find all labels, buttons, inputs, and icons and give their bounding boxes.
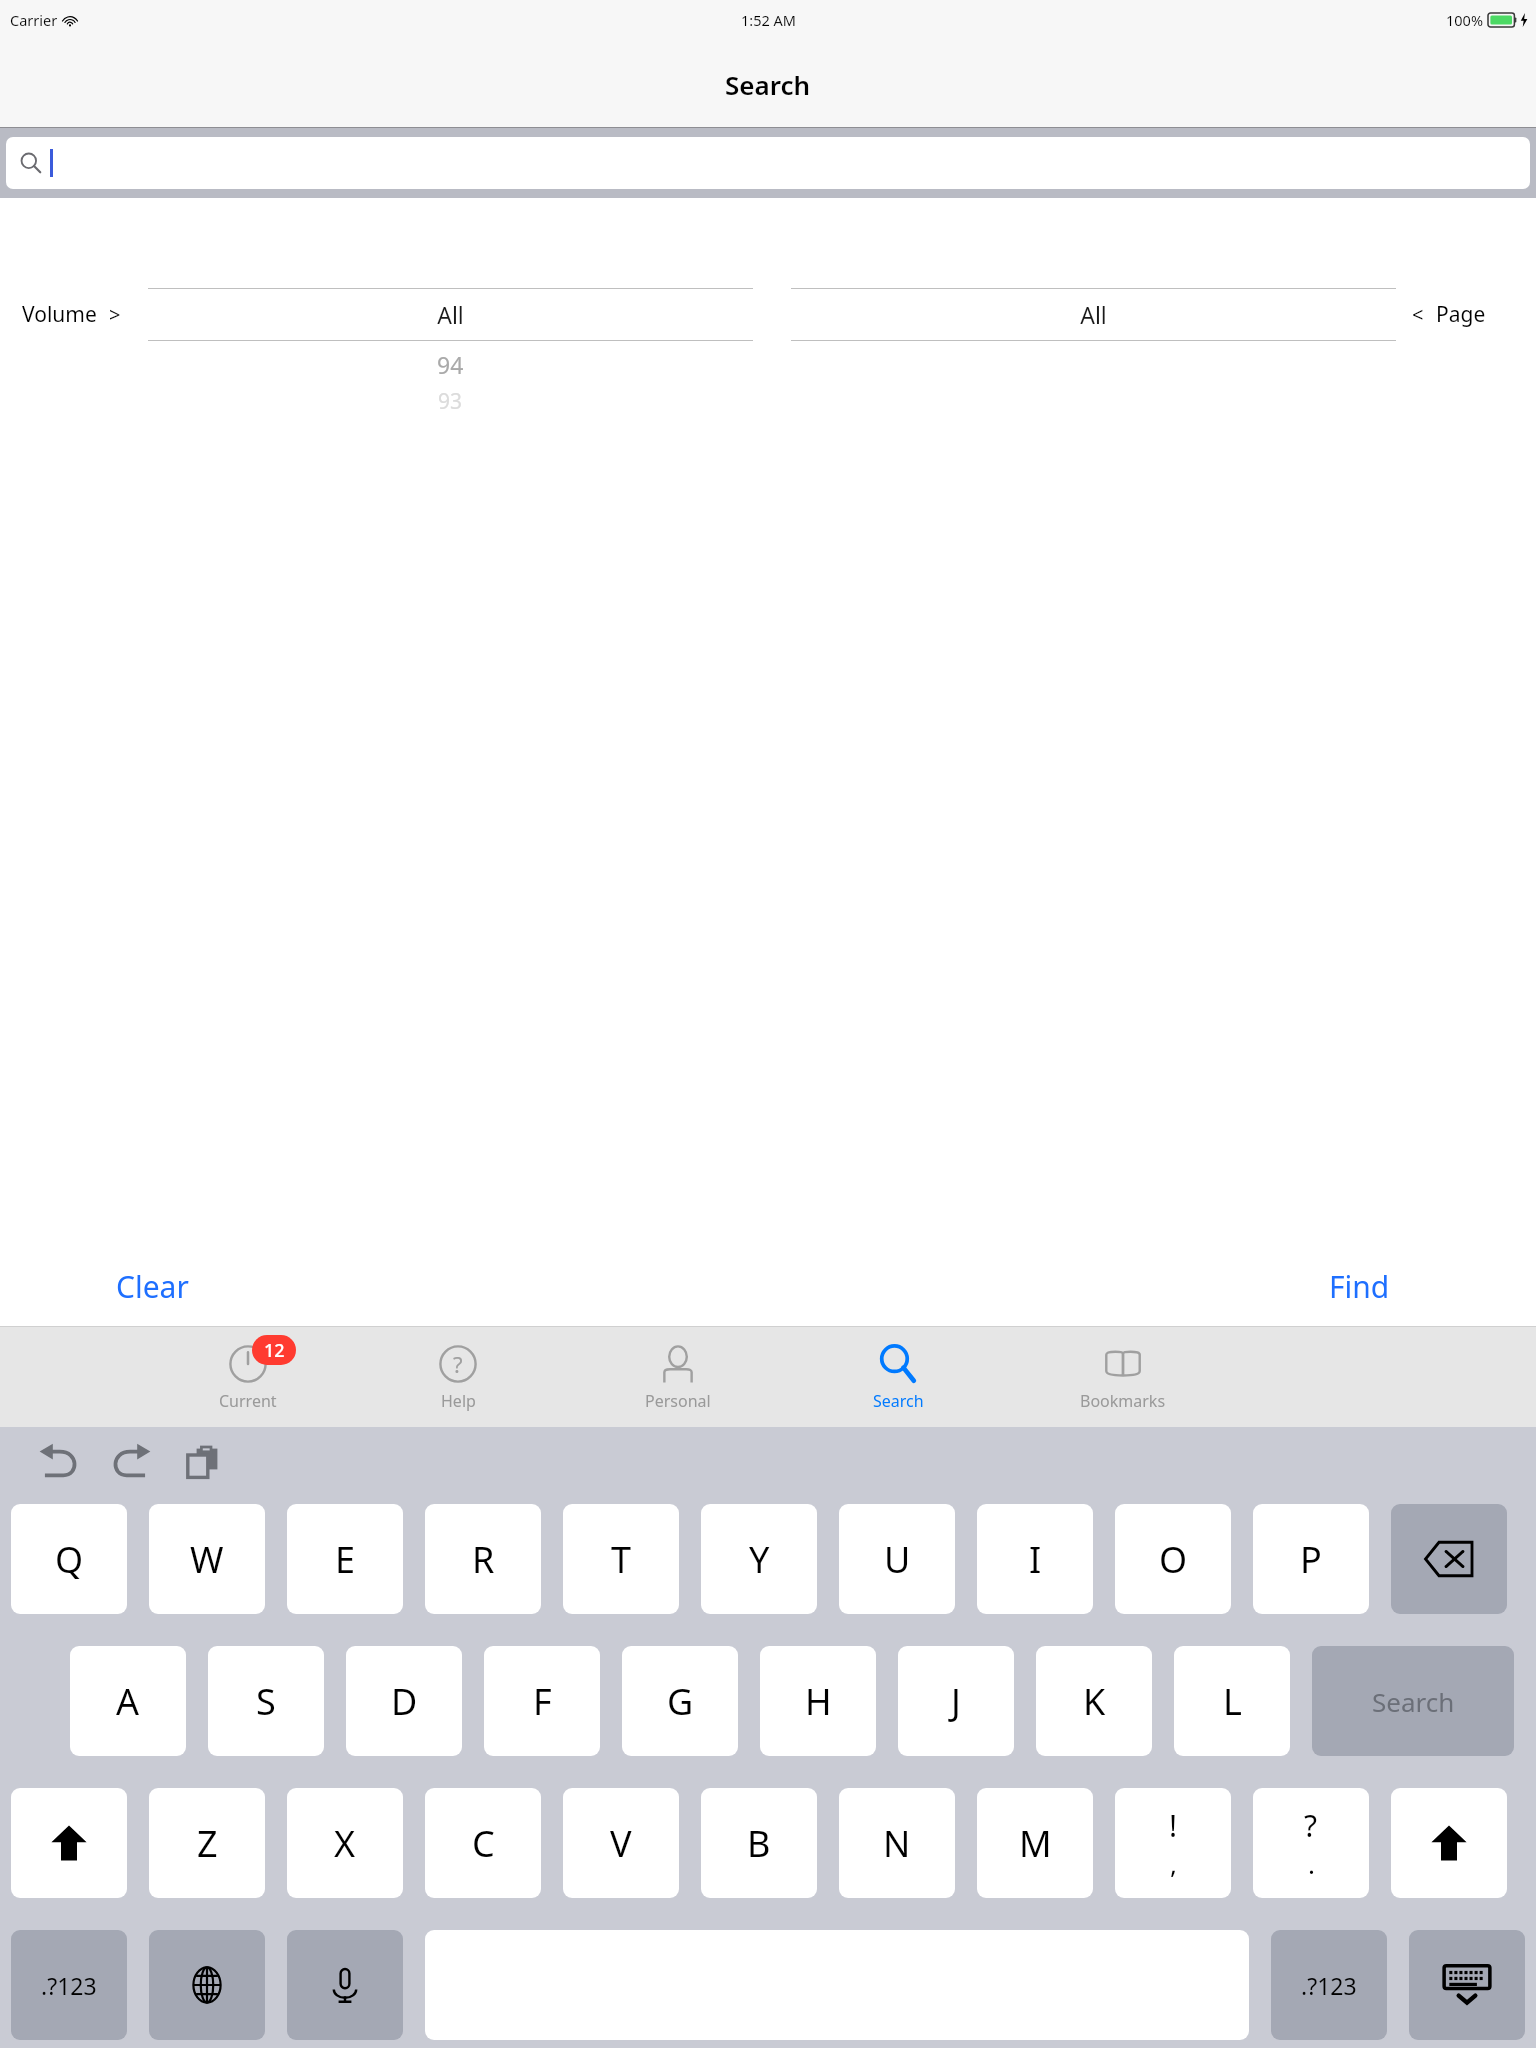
staticText: S — [256, 1677, 276, 1726]
staticText: < — [1412, 301, 1424, 328]
button[interactable]: ? — [1253, 1788, 1369, 1898]
staticText: , — [1170, 1846, 1177, 1881]
button[interactable]: Backspace — [1391, 1504, 1507, 1614]
staticText: Search — [873, 1390, 924, 1412]
staticText: O — [1159, 1535, 1188, 1584]
button[interactable]: .?123 — [11, 1930, 127, 2040]
button[interactable]: Paste — [174, 1434, 232, 1492]
staticText: ? — [1304, 1805, 1318, 1846]
button[interactable]: H — [760, 1646, 876, 1756]
button[interactable]: Find — [1313, 1258, 1406, 1315]
button[interactable]: J — [898, 1646, 1014, 1756]
button[interactable]: ? — [348, 1327, 568, 1427]
staticText: Search — [725, 67, 811, 102]
button[interactable]: T — [563, 1504, 679, 1614]
staticText: Help — [441, 1390, 476, 1412]
staticText: 1:52 AM — [741, 10, 796, 30]
button[interactable]: 12 — [148, 1327, 348, 1427]
staticText: A — [116, 1677, 140, 1726]
staticText: Page — [1436, 300, 1486, 329]
staticText: D — [391, 1677, 418, 1726]
button[interactable]: K — [1036, 1646, 1152, 1756]
staticText: Find — [1329, 1266, 1390, 1307]
staticText: .?123 — [1301, 1970, 1357, 2001]
staticText: X — [334, 1819, 356, 1868]
button[interactable]: N — [839, 1788, 955, 1898]
button[interactable]: E — [287, 1504, 403, 1614]
staticText: 94 — [437, 349, 464, 380]
button[interactable]: < — [1396, 288, 1536, 340]
button[interactable]: Dictation — [287, 1930, 403, 2040]
button[interactable]: Hide keyboard — [1409, 1930, 1525, 2040]
staticText: U — [884, 1535, 911, 1584]
staticText: 12 — [264, 1338, 285, 1363]
button[interactable]: O — [1115, 1504, 1231, 1614]
button[interactable]: Clear — [100, 1258, 205, 1315]
staticText: Bookmarks — [1080, 1390, 1166, 1412]
staticText: T — [611, 1535, 632, 1584]
button[interactable]: Undo — [30, 1434, 88, 1492]
button[interactable]: All — [791, 288, 1396, 341]
button[interactable]: P — [1253, 1504, 1369, 1614]
button[interactable]: F — [484, 1646, 600, 1756]
staticText: F — [533, 1677, 552, 1726]
staticText: N — [883, 1819, 911, 1868]
staticText: W — [190, 1535, 224, 1584]
button[interactable]: ! — [1115, 1788, 1231, 1898]
staticText: Q — [55, 1535, 84, 1584]
button[interactable]: X — [287, 1788, 403, 1898]
button[interactable]: D — [346, 1646, 462, 1756]
button[interactable]: Q — [11, 1504, 127, 1614]
staticText: Y — [749, 1535, 770, 1584]
staticText: Carrier — [10, 10, 58, 30]
staticText: L — [1223, 1677, 1242, 1726]
button[interactable]: I — [977, 1504, 1093, 1614]
button[interactable]: R — [425, 1504, 541, 1614]
staticText: 100% — [1446, 10, 1483, 30]
staticText: H — [805, 1677, 832, 1726]
staticText: G — [667, 1677, 694, 1726]
button[interactable]: Volume — [0, 288, 148, 340]
staticText: Volume — [22, 300, 97, 329]
staticText: B — [747, 1819, 771, 1868]
button[interactable]: U — [839, 1504, 955, 1614]
button[interactable]: B — [701, 1788, 817, 1898]
staticText: ! — [1169, 1805, 1178, 1846]
staticText: M — [1019, 1819, 1052, 1868]
button[interactable]: Z — [149, 1788, 265, 1898]
button[interactable]: Search — [788, 1327, 1008, 1427]
button[interactable]: .?123 — [1271, 1930, 1387, 2040]
button[interactable]: Search — [1312, 1646, 1514, 1756]
button[interactable]: All — [148, 288, 753, 427]
button[interactable]: A — [70, 1646, 186, 1756]
staticText: 93 — [438, 387, 463, 416]
button[interactable]: Shift — [1391, 1788, 1507, 1898]
button[interactable]: Redo — [102, 1434, 160, 1492]
staticText: All — [437, 299, 464, 330]
staticText: Search — [1372, 1684, 1455, 1719]
button[interactable] — [6, 137, 1530, 189]
staticText: . — [1308, 1846, 1315, 1881]
staticText: All — [1080, 299, 1107, 330]
button[interactable]: G — [622, 1646, 738, 1756]
button[interactable]: Change keyboard language — [149, 1930, 265, 2040]
button[interactable]: C — [425, 1788, 541, 1898]
button[interactable]: Personal — [568, 1327, 788, 1427]
staticText: I — [1029, 1535, 1042, 1584]
staticText: Z — [197, 1819, 218, 1868]
staticText: ? — [453, 1349, 463, 1379]
button[interactable]: Y — [701, 1504, 817, 1614]
button[interactable]: M — [977, 1788, 1093, 1898]
button[interactable]: Bookmarks — [1008, 1327, 1238, 1427]
button[interactable]: V — [563, 1788, 679, 1898]
staticText: P — [1300, 1535, 1322, 1584]
button[interactable]: S — [208, 1646, 324, 1756]
button[interactable]: W — [149, 1504, 265, 1614]
staticText: V — [610, 1819, 632, 1868]
staticText: J — [951, 1677, 961, 1726]
button[interactable]: L — [1174, 1646, 1290, 1756]
staticText: .?123 — [41, 1970, 97, 2001]
staticText: R — [472, 1535, 495, 1584]
button[interactable]: Shift — [11, 1788, 127, 1898]
